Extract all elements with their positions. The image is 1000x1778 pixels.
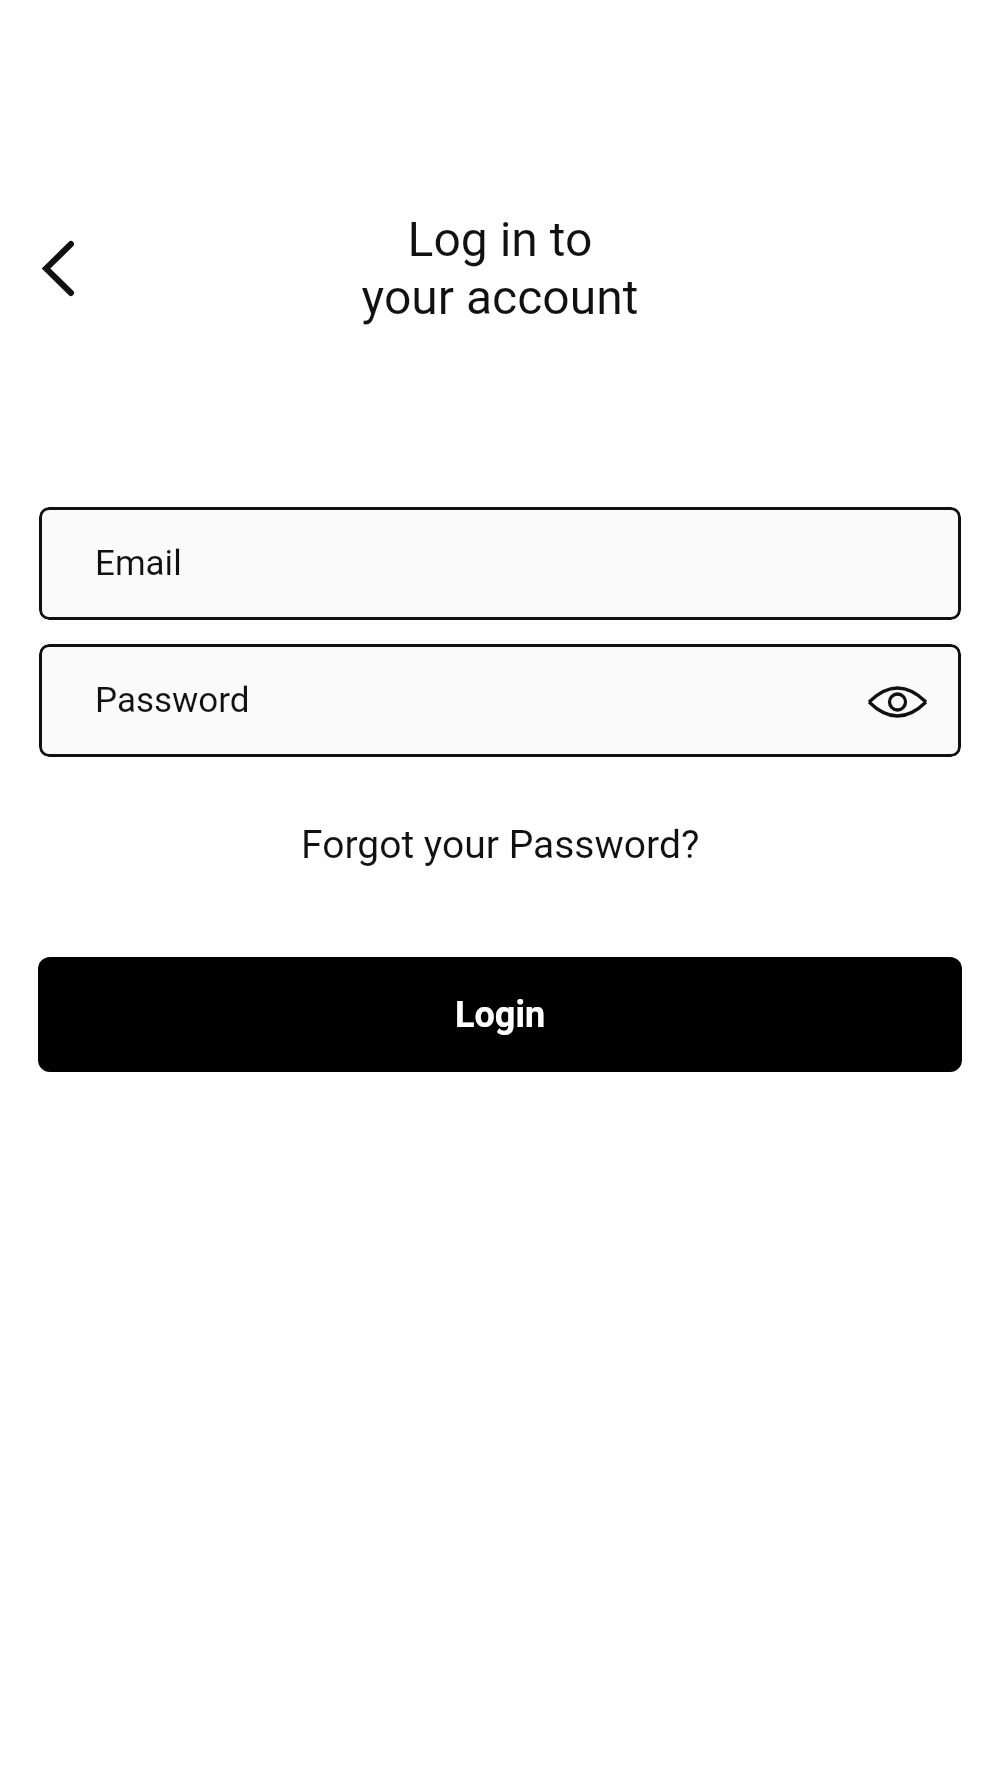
button[interactable]: Email [39, 507, 961, 620]
staticText: Email [95, 543, 182, 584]
button[interactable] [18, 225, 98, 311]
button[interactable]: Password [39, 644, 961, 757]
staticText: Log in to your account [0, 211, 1000, 326]
staticText: Password [95, 680, 250, 721]
button[interactable] [858, 663, 936, 741]
staticText: Login [455, 994, 546, 1036]
button[interactable]: Login [38, 957, 962, 1072]
button[interactable]: Forgot your Password? [301, 822, 700, 868]
